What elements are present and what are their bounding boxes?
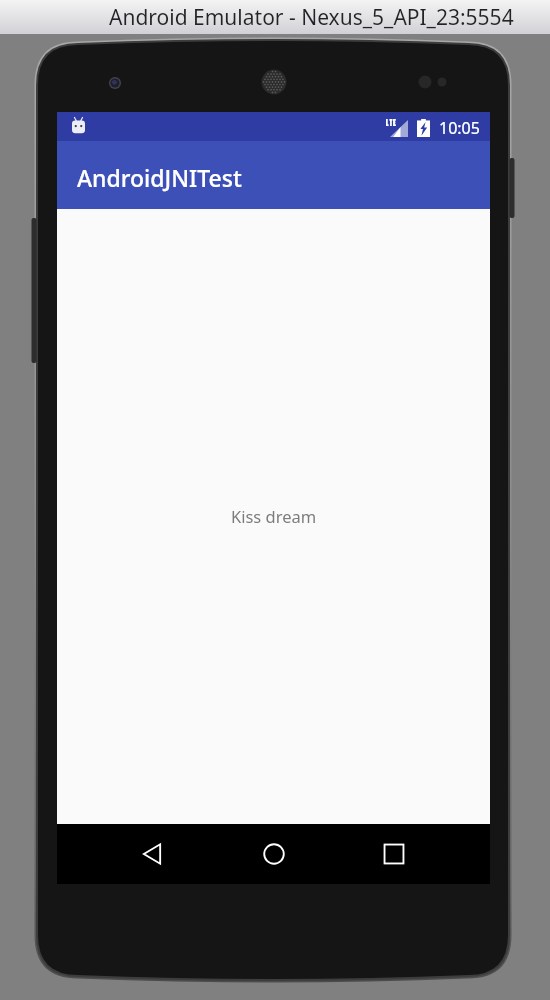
button[interactable]: AndroidJNITest [57,141,490,209]
button[interactable]: Back [130,830,178,878]
staticText: Android Emulator - Nexus_5_API_23:5554 [109,3,514,32]
staticText: Kiss dream [231,505,317,527]
button[interactable]: Home [250,830,298,878]
staticText: AndroidJNITest [77,162,242,193]
staticText: 10:05 [439,117,480,139]
button[interactable]: Recent apps [370,830,418,878]
